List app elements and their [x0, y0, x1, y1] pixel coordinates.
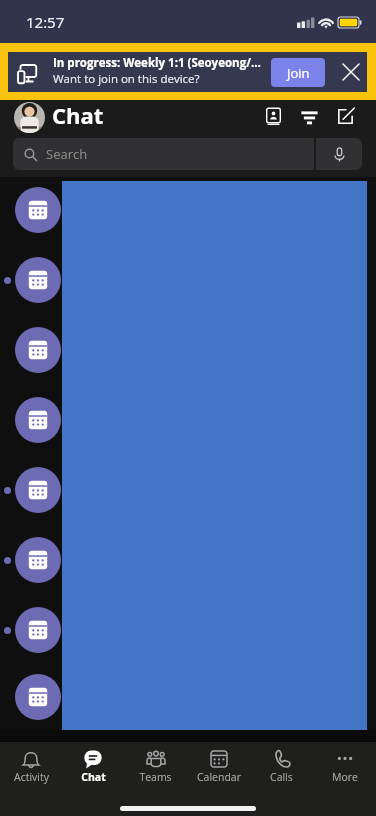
button[interactable]: Filter: [291, 98, 327, 134]
staticText: Chat: [81, 770, 106, 784]
button[interactable]: Dismiss: [331, 52, 371, 92]
staticText: More: [332, 770, 358, 784]
staticText: Chat: [52, 100, 104, 130]
button[interactable]: Calls: [250, 742, 313, 790]
button[interactable]: [0, 175, 376, 245]
staticText: Search: [46, 145, 88, 163]
staticText: Teams: [139, 770, 172, 784]
button[interactable]: [0, 455, 376, 525]
button[interactable]: [0, 315, 376, 385]
staticText: Activity: [14, 770, 49, 784]
button[interactable]: [0, 245, 376, 315]
button[interactable]: [0, 595, 376, 665]
button[interactable]: Join: [271, 58, 325, 87]
button[interactable]: Chat: [62, 742, 124, 790]
staticText: Calls: [270, 770, 293, 784]
staticText: Join: [287, 64, 310, 82]
staticText: 12:57: [26, 12, 65, 32]
staticText: In progress: Weekly 1:1 (Seoyeong/…: [53, 55, 261, 71]
button[interactable]: Profile: [14, 102, 45, 133]
button[interactable]: [0, 385, 376, 455]
button[interactable]: New chat: [327, 98, 363, 134]
button[interactable]: [0, 665, 376, 728]
staticText: Calendar: [197, 770, 241, 784]
button[interactable]: [0, 525, 376, 595]
button[interactable]: Teams: [124, 742, 187, 790]
button[interactable]: Activity: [0, 742, 62, 790]
button[interactable]: Contacts: [255, 98, 291, 134]
button[interactable]: Search: [13, 138, 314, 170]
staticText: Want to join on this device?: [53, 71, 200, 87]
button[interactable]: Calendar: [187, 742, 250, 790]
button[interactable]: More: [313, 742, 376, 790]
button[interactable]: Voice search: [316, 138, 362, 170]
